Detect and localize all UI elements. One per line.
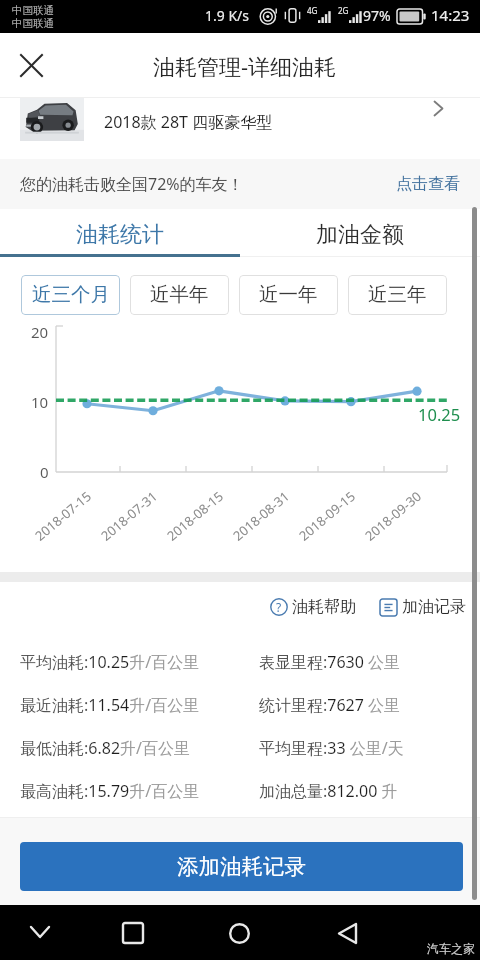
button[interactable]: Recents <box>111 911 155 955</box>
staticText: 2G <box>338 5 349 16</box>
button[interactable]: 2018款 28T 四驱豪华型 <box>0 98 480 159</box>
staticText: 汽车之家 <box>427 941 475 956</box>
staticText: ? <box>276 599 282 615</box>
button[interactable]: Back <box>325 911 369 955</box>
button[interactable]: 点击查看 <box>392 170 464 198</box>
button[interactable]: 油耗统计 <box>0 209 240 257</box>
staticText: 近三年 <box>368 282 427 307</box>
staticText: 油耗帮助 <box>292 597 356 617</box>
staticText: 统计里程:7627 公里 <box>259 694 401 716</box>
staticText: 近三个月 <box>32 282 110 307</box>
staticText: 最近油耗:11.54升/百公里 <box>20 694 200 716</box>
staticText: 添加油耗记录 <box>177 853 306 880</box>
staticText: 您的油耗击败全国72%的车友！ <box>20 173 244 195</box>
staticText: 中国联通 <box>12 17 54 30</box>
button[interactable]: 近半年 <box>130 275 229 315</box>
staticText: 油耗管理-详细油耗 <box>153 51 337 81</box>
staticText: 中国联通 <box>12 4 54 17</box>
button[interactable]: 加油金额 <box>240 209 480 257</box>
button[interactable]: 添加油耗记录 <box>20 842 463 891</box>
staticText: 近一年 <box>259 282 318 307</box>
staticText: 平均里程:33 公里/天 <box>259 737 404 759</box>
staticText: 2018款 28T 四驱豪华型 <box>104 111 273 133</box>
button[interactable]: 近三年 <box>348 275 447 315</box>
button[interactable]: 近三个月 <box>21 275 120 315</box>
staticText: 1.9 K/s <box>205 6 249 25</box>
staticText: 平均油耗:10.25升/百公里 <box>20 651 200 673</box>
staticText: 油耗统计 <box>76 221 164 249</box>
button[interactable]: ? <box>268 591 358 623</box>
staticText: 加油总量:812.00 升 <box>259 780 398 802</box>
button[interactable]: Hide keyboard <box>18 910 62 954</box>
staticText: 加油金额 <box>316 221 404 249</box>
staticText: 14:23 <box>431 5 470 25</box>
button[interactable]: Home <box>217 911 261 955</box>
staticText: 加油记录 <box>402 597 466 617</box>
staticText: 97% <box>363 6 391 25</box>
staticText: 点击查看 <box>396 174 460 194</box>
staticText: 最低油耗:6.82升/百公里 <box>20 737 190 759</box>
staticText: 近半年 <box>150 282 209 307</box>
staticText: 表显里程:7630 公里 <box>259 651 401 673</box>
button[interactable]: 近一年 <box>239 275 338 315</box>
staticText: 4G <box>307 5 318 16</box>
button[interactable]: Close <box>6 40 56 90</box>
button[interactable]: 加油记录 <box>378 591 468 623</box>
staticText: 最高油耗:15.79升/百公里 <box>20 780 200 802</box>
